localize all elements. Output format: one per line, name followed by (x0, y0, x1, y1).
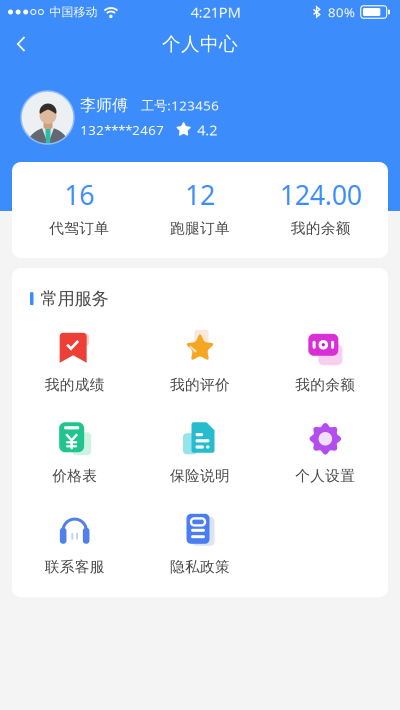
button[interactable]: 保险说明 (137, 422, 263, 484)
button[interactable]: 我的评价 (137, 331, 263, 393)
staticText: 中国移动 (49, 5, 97, 19)
staticText: 李师傅 (80, 95, 128, 115)
staticText: 12 (185, 177, 215, 212)
button[interactable]: 我的成绩 (12, 331, 137, 393)
button[interactable]: Back (0, 24, 42, 64)
staticText: 个人中心 (162, 32, 238, 55)
staticText: 常用服务 (40, 288, 108, 309)
button[interactable]: 我的余额 (263, 331, 388, 393)
staticText: 保险说明 (170, 467, 230, 485)
staticText: 隐私政策 (170, 558, 230, 576)
staticText: 价格表 (52, 467, 97, 485)
staticText: 我的评价 (170, 376, 230, 394)
button[interactable]: 联系客服 (12, 513, 137, 575)
staticText: 个人设置 (295, 467, 355, 485)
button[interactable]: 个人设置 (263, 422, 388, 484)
button[interactable]: 价格表 (12, 422, 137, 484)
staticText: 跑腿订单 (170, 219, 230, 237)
staticText: 80% (328, 3, 355, 21)
staticText: 我的余额 (295, 376, 355, 394)
staticText: 124.00 (280, 177, 362, 212)
staticText: 联系客服 (45, 558, 105, 576)
staticText: 代驾订单 (49, 219, 109, 237)
staticText: 4:21PM (191, 2, 241, 22)
staticText: 132****2467 (80, 121, 164, 139)
staticText: 我的余额 (291, 219, 351, 237)
staticText: 我的成绩 (45, 376, 105, 394)
staticText: 工号:123456 (141, 96, 219, 114)
staticText: 4.2 (197, 120, 217, 140)
button[interactable]: 隐私政策 (137, 513, 263, 575)
staticText: 16 (64, 177, 94, 212)
